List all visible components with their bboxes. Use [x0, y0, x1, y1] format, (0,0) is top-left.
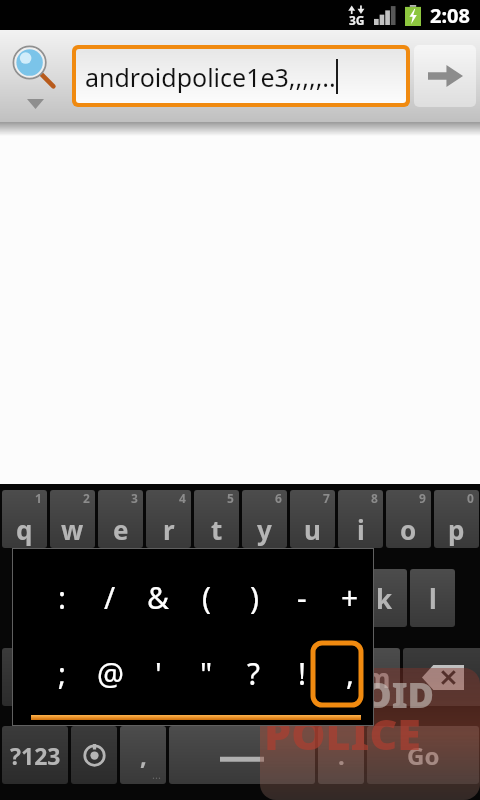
- button[interactable]: q: [2, 490, 47, 548]
- staticText: (: [202, 577, 211, 618]
- button[interactable]: Input settings: [71, 726, 117, 784]
- button[interactable]: k: [362, 569, 407, 627]
- staticText: androidpolice1e3,,,,,..: [85, 60, 336, 94]
- button[interactable]: v: [211, 648, 256, 706]
- button[interactable]: &: [135, 569, 181, 625]
- staticText: m: [365, 660, 391, 695]
- button[interactable]: i: [338, 490, 383, 548]
- staticText: d: [136, 581, 153, 616]
- button[interactable]: j: [314, 569, 359, 627]
- button[interactable]: n: [307, 648, 352, 706]
- staticText: p: [448, 512, 465, 547]
- staticText: @: [97, 653, 124, 694]
- button[interactable]: ,: [120, 726, 166, 784]
- button[interactable]: e: [98, 490, 143, 548]
- button[interactable]: !: [279, 645, 325, 701]
- staticText: r: [163, 512, 175, 547]
- button[interactable]: ,: [327, 645, 373, 701]
- staticText: +: [341, 577, 359, 618]
- button[interactable]: Submit search: [414, 45, 476, 107]
- button[interactable]: t: [194, 490, 239, 548]
- button[interactable]: ": [183, 645, 229, 701]
- button[interactable]: @: [87, 645, 133, 701]
- staticText: ?: [247, 653, 261, 694]
- button[interactable]: ;: [39, 645, 85, 701]
- button[interactable]: ': [135, 645, 181, 701]
- button[interactable]: ): [231, 569, 277, 625]
- staticText: 7: [323, 490, 330, 506]
- staticText: 2: [83, 490, 90, 506]
- staticText: !: [298, 653, 307, 694]
- button[interactable]: d: [122, 569, 167, 627]
- button[interactable]: /: [87, 569, 133, 625]
- button[interactable]: ?: [231, 645, 277, 701]
- staticText: 8: [371, 490, 378, 506]
- staticText: 2:08: [430, 2, 470, 29]
- staticText: k: [376, 581, 393, 616]
- button[interactable]: (: [183, 569, 229, 625]
- staticText: Go: [407, 739, 440, 772]
- button[interactable]: +: [327, 569, 373, 625]
- button[interactable]: r: [146, 490, 191, 548]
- button[interactable]: Delete: [403, 648, 480, 706]
- staticText: 6: [275, 490, 282, 506]
- staticText: 3G: [349, 12, 365, 28]
- button[interactable]: o: [386, 490, 431, 548]
- button[interactable]: p: [434, 490, 479, 548]
- button[interactable]: Search provider: [0, 30, 70, 122]
- button[interactable]: l: [410, 569, 455, 627]
- button[interactable]: :: [39, 569, 85, 625]
- staticText: 5: [227, 490, 234, 506]
- button[interactable]: c: [163, 648, 208, 706]
- staticText: 3: [131, 490, 138, 506]
- staticText: l: [429, 581, 437, 616]
- staticText: ": [200, 653, 213, 694]
- button[interactable]: b: [259, 648, 304, 706]
- button[interactable]: g: [218, 569, 263, 627]
- button[interactable]: z: [67, 648, 112, 706]
- button[interactable]: x: [115, 648, 160, 706]
- button[interactable]: u: [290, 490, 335, 548]
- button[interactable]: s: [74, 569, 119, 627]
- staticText: :: [58, 577, 67, 618]
- staticText: 9: [419, 490, 426, 506]
- staticText: o: [400, 512, 417, 547]
- staticText: -: [297, 577, 307, 618]
- button[interactable]: a: [26, 569, 71, 627]
- button[interactable]: w: [50, 490, 95, 548]
- button[interactable]: Go: [367, 726, 479, 784]
- staticText: ...: [152, 767, 161, 782]
- staticText: 1: [35, 490, 42, 506]
- staticText: ': [155, 653, 162, 694]
- button[interactable]: -: [279, 569, 325, 625]
- button[interactable]: m: [355, 648, 400, 706]
- button[interactable]: f: [170, 569, 215, 627]
- staticText: w: [61, 512, 84, 547]
- staticText: ?123: [10, 740, 61, 771]
- button[interactable]: y: [242, 490, 287, 548]
- staticText: 4: [179, 490, 186, 506]
- button[interactable]: androidpolice1e3,,,,,..: [76, 49, 406, 103]
- staticText: ): [250, 577, 259, 618]
- staticText: POLICE: [264, 704, 421, 763]
- button[interactable]: h: [266, 569, 311, 627]
- button[interactable]: ?123: [2, 726, 68, 784]
- staticText: ;: [58, 653, 67, 694]
- button[interactable]: Space: [169, 726, 315, 784]
- button[interactable]: .: [318, 726, 364, 784]
- staticText: ANDROID: [256, 670, 434, 719]
- button[interactable]: Shift: [2, 648, 64, 706]
- staticText: y: [257, 512, 272, 547]
- staticText: /: [104, 577, 116, 618]
